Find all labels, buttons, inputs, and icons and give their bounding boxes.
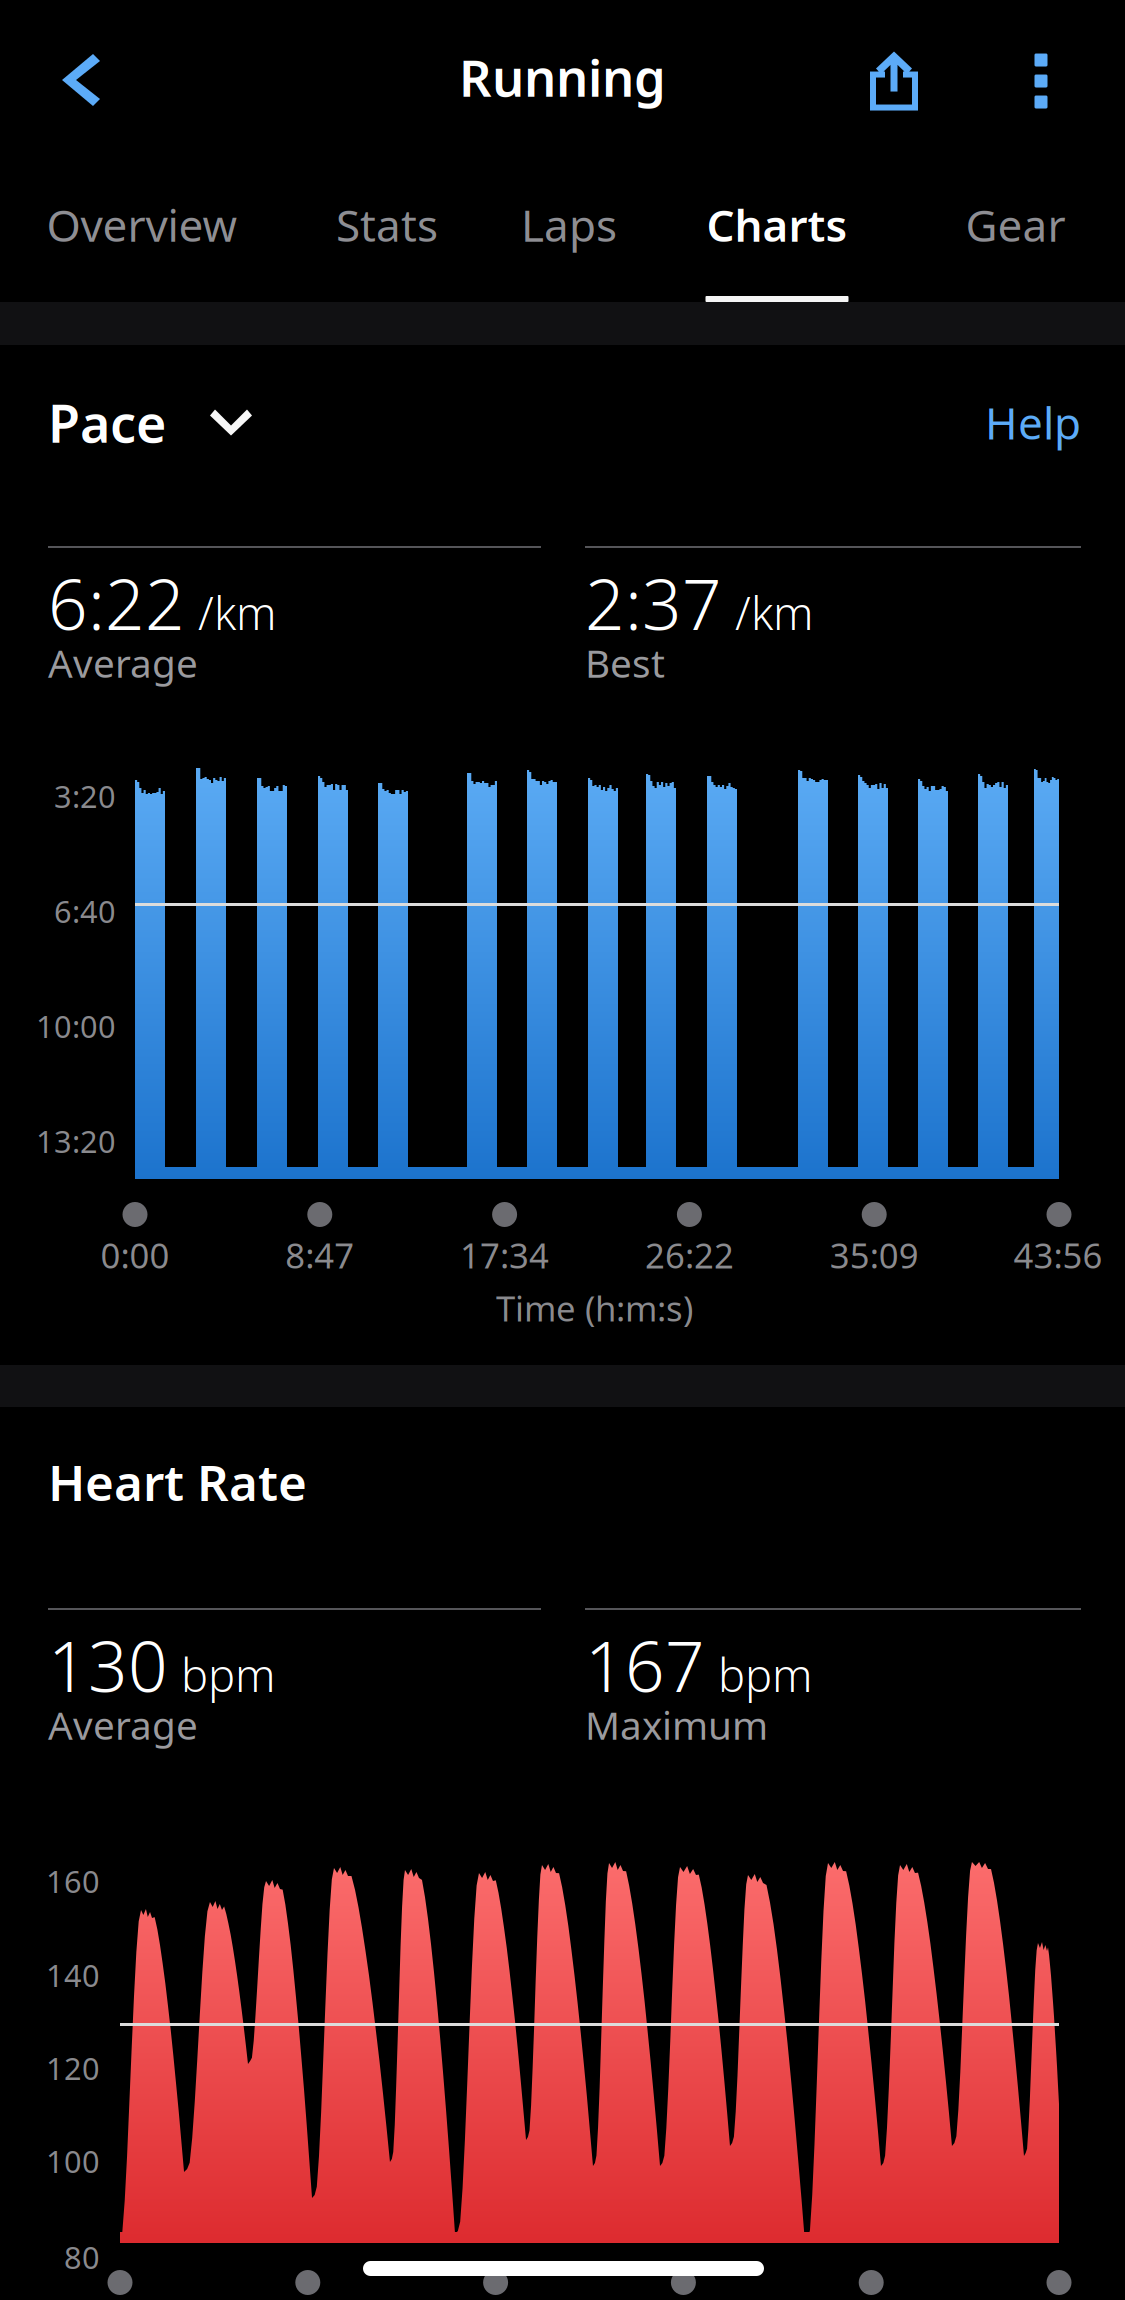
staticText: 6:22: [48, 557, 185, 649]
staticText: 167: [585, 1619, 705, 1711]
staticText: Stats: [336, 196, 438, 254]
staticText: Overview: [46, 196, 237, 254]
staticText: Gear: [965, 196, 1065, 254]
staticText: bpm: [718, 1644, 813, 1704]
staticText: Laps: [521, 196, 617, 254]
button[interactable]: Charts: [648, 162, 906, 302]
staticText: /km: [198, 582, 277, 642]
staticText: 130: [48, 1619, 168, 1711]
staticText: Help: [985, 393, 1081, 452]
staticText: 2:37: [585, 557, 722, 649]
staticText: Maximum: [585, 1699, 768, 1750]
staticText: Average: [48, 1699, 198, 1750]
staticText: bpm: [181, 1644, 276, 1704]
staticText: Time (h:m:s): [496, 1285, 693, 1331]
button[interactable]: Stats: [284, 162, 490, 302]
staticText: 6:40: [54, 891, 116, 931]
staticText: Average: [48, 637, 198, 688]
staticText: Pace: [48, 388, 166, 457]
button[interactable]: Laps: [490, 162, 648, 302]
button[interactable]: Pace: [48, 372, 252, 473]
staticText: 10:00: [36, 1006, 116, 1046]
staticText: 8:47: [285, 1232, 354, 1278]
button[interactable]: Gear: [906, 162, 1125, 302]
staticText: 17:34: [460, 1232, 549, 1278]
staticText: Charts: [706, 196, 847, 254]
button[interactable]: More options: [988, 11, 1094, 151]
staticText: 26:22: [645, 1232, 734, 1278]
staticText: 0:00: [100, 1232, 169, 1278]
staticText: Heart Rate: [48, 1449, 307, 1514]
staticText: 160: [46, 1861, 100, 1901]
button[interactable]: Back: [32, 11, 132, 151]
staticText: 13:20: [36, 1121, 116, 1161]
staticText: 43:56: [1013, 1232, 1102, 1278]
button[interactable]: Help: [985, 377, 1081, 468]
staticText: 3:20: [54, 776, 116, 816]
staticText: Best: [585, 637, 665, 688]
button[interactable]: Share: [837, 11, 951, 151]
staticText: /km: [735, 582, 814, 642]
button[interactable]: Overview: [0, 162, 284, 302]
staticText: 80: [64, 2237, 100, 2277]
staticText: 140: [46, 1955, 100, 1995]
staticText: 35:09: [830, 1232, 919, 1278]
staticText: Running: [459, 43, 666, 111]
staticText: 100: [46, 2141, 100, 2181]
staticText: 120: [46, 2048, 100, 2088]
